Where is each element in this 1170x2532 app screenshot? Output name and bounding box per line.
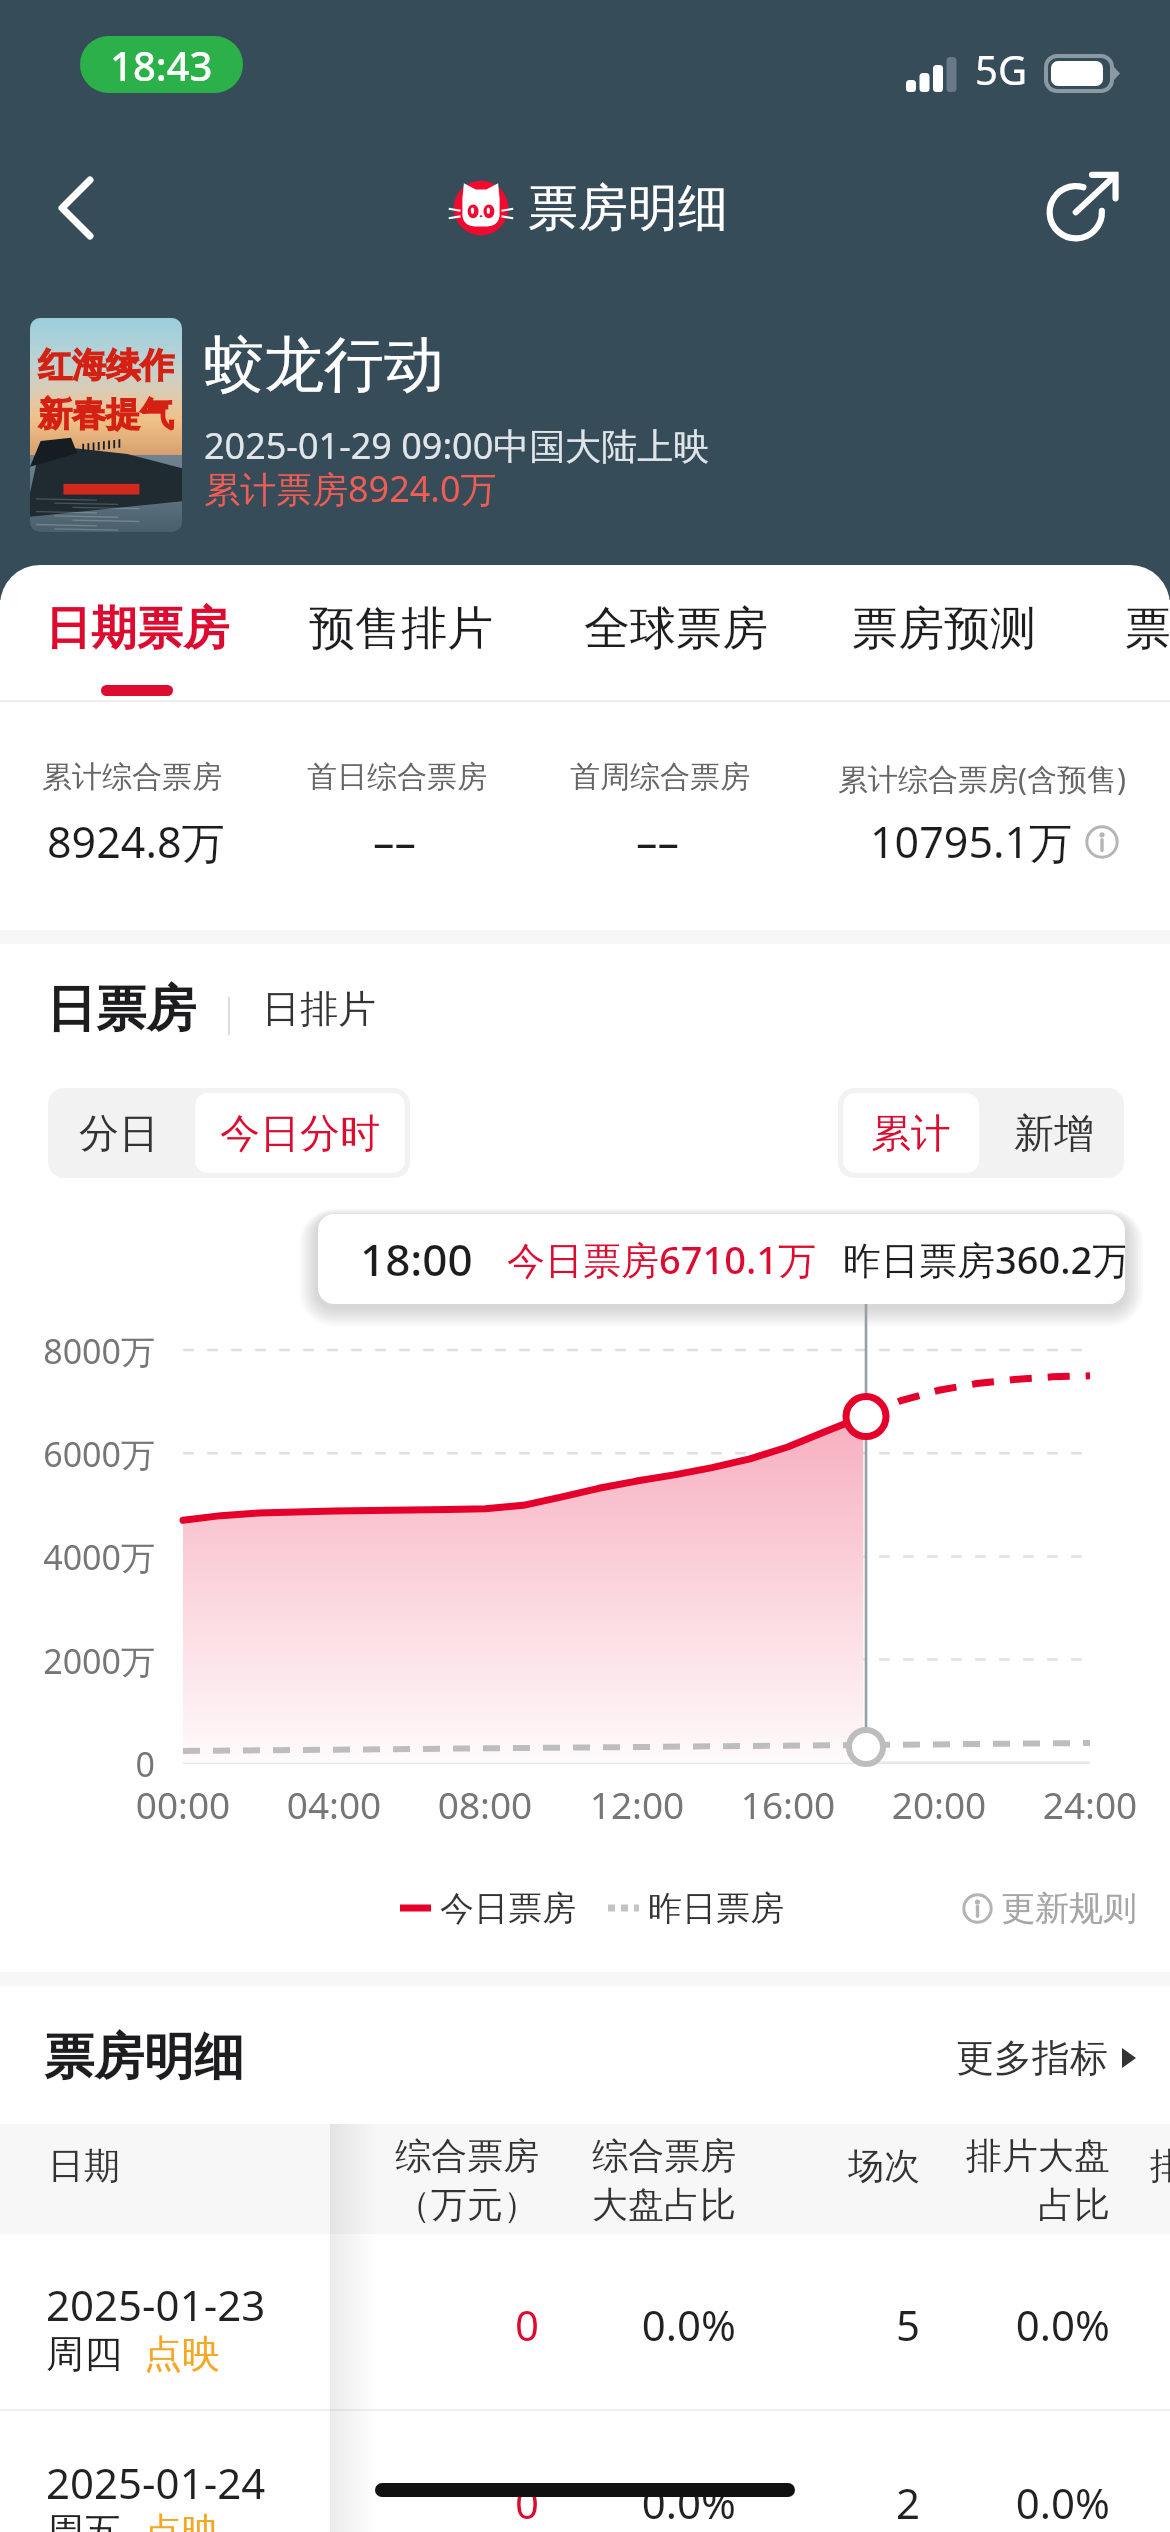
staticText: 2025-01-23 [46, 2276, 266, 2333]
staticText: 18:43 [110, 38, 213, 92]
staticText: 蛟龙行动 [204, 327, 444, 403]
staticText: 0.0% [456, 2296, 736, 2353]
button[interactable]: 新增 [989, 1093, 1119, 1173]
staticText: 全球票房 [584, 600, 768, 658]
staticText: 票 [1125, 600, 1170, 658]
staticText: 昨日票房360.2万 [843, 1233, 1125, 1285]
staticText: 票房明细 [528, 177, 728, 240]
staticText: 分日 [79, 1108, 159, 1158]
staticText: 2025-01-24 [46, 2454, 266, 2511]
staticText: 场次 [640, 2143, 920, 2188]
staticText: 4000万 [5, 1534, 155, 1580]
staticText: 今日分时 [220, 1108, 380, 1158]
staticText: 今日票房 [440, 1887, 576, 1930]
button[interactable]: 红海续作 [30, 318, 182, 532]
staticText: 20:00 [849, 1779, 1029, 1829]
button[interactable]: 票 [1083, 578, 1170, 700]
staticText: 8924.8万 [47, 812, 225, 871]
button[interactable]: 分日 [53, 1093, 185, 1173]
staticText: 12:00 [547, 1779, 727, 1829]
staticText: 排 [1150, 2143, 1170, 2188]
staticText: 累计 [871, 1108, 951, 1158]
staticText: 5 [640, 2296, 920, 2353]
button[interactable]: 票房预测 [812, 578, 1076, 700]
staticText: 票房预测 [852, 600, 1036, 658]
staticText: 昨日票房 [648, 1887, 784, 1930]
staticText: 首周综合票房 [570, 758, 750, 796]
staticText: 更新规则 [1001, 1887, 1137, 1930]
staticText: 预售排片 [309, 600, 493, 658]
button[interactable]: 累计 [843, 1093, 979, 1173]
staticText: 10795.1万 [870, 812, 1073, 871]
staticText: 0 [5, 1741, 155, 1787]
staticText: 00:00 [93, 1779, 273, 1829]
staticText: 2025-01-29 09:00中国大陆上映 [204, 421, 710, 470]
staticText: 5G [975, 42, 1027, 96]
staticText: 2 [640, 2474, 920, 2531]
staticText: 18:00 [360, 1229, 473, 1289]
staticText: 排片大盘 占比 [830, 2133, 1110, 2228]
staticText: 综合票房 （万元） [259, 2133, 539, 2228]
staticText: 点映 [144, 2508, 220, 2532]
staticText: 8000万 [5, 1328, 155, 1374]
button[interactable] [0, 2234, 1170, 2410]
button[interactable]: 今日票房 [400, 1884, 576, 1932]
staticText: 周五 [46, 2508, 122, 2532]
button[interactable]: 更多指标 [956, 2034, 1136, 2082]
staticText: 24:00 [1000, 1779, 1170, 1829]
staticText: 票房明细 [44, 2026, 244, 2089]
button[interactable]: 全球票房 [544, 578, 808, 700]
button[interactable]: 日排片 [262, 980, 376, 1038]
staticText: 0 [259, 2474, 539, 2531]
button[interactable]: Back [20, 152, 132, 264]
staticText: 首日综合票房 [307, 758, 487, 796]
staticText: 累计综合票房(含预售) [838, 758, 1126, 799]
staticText: 16:00 [698, 1779, 878, 1829]
button[interactable] [0, 2412, 1170, 2532]
staticText: 新春提气 [38, 393, 174, 436]
staticText: 日票房 [46, 978, 196, 1038]
button[interactable]: 日期票房 [5, 578, 269, 700]
staticText: 今日票房6710.1万 [507, 1233, 817, 1285]
staticText: 红海续作 [38, 344, 174, 387]
staticText: –– [373, 812, 416, 871]
button[interactable]: 日票房 [46, 978, 196, 1038]
staticText: 0.0% [830, 2474, 1110, 2531]
staticText: 综合票房 大盘占比 [456, 2133, 736, 2228]
staticText: –– [636, 812, 679, 871]
staticText: 0.0% [456, 2474, 736, 2531]
button[interactable]: 今日分时 [195, 1093, 405, 1173]
staticText: 日排片 [262, 985, 376, 1033]
button[interactable]: 预售排片 [269, 578, 533, 700]
staticText: 2000万 [5, 1638, 155, 1684]
staticText: 累计票房8924.0万 [204, 464, 497, 513]
staticText: 日期票房 [45, 600, 229, 658]
button[interactable]: Share [1028, 152, 1136, 260]
staticText: 04:00 [244, 1779, 424, 1829]
staticText: 新增 [1014, 1108, 1094, 1158]
staticText: 0 [259, 2296, 539, 2353]
button[interactable]: 昨日票房 [608, 1884, 784, 1932]
staticText: 更多指标 [956, 2034, 1108, 2082]
staticText: 08:00 [395, 1779, 575, 1829]
button[interactable]: 更新规则 [962, 1884, 1137, 1932]
staticText: 6000万 [5, 1431, 155, 1477]
staticText: 点映 [144, 2330, 220, 2378]
staticText: 累计综合票房 [42, 758, 222, 796]
staticText: 0.0% [830, 2296, 1110, 2353]
staticText: 日期 [48, 2143, 120, 2188]
staticText: 周四 [46, 2330, 122, 2378]
